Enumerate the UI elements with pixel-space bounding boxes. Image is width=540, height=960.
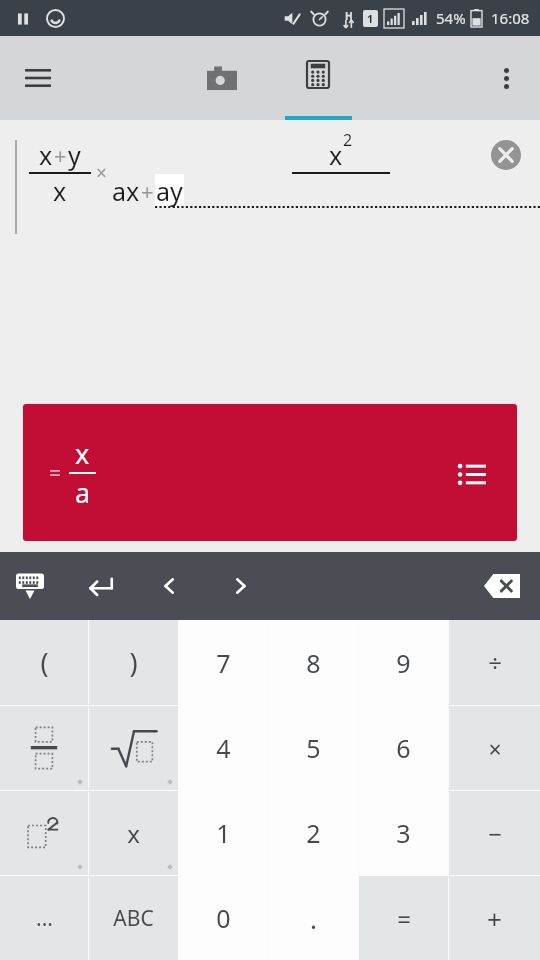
button[interactable]: Open navigation menu [14,54,62,102]
button[interactable]: × [449,706,540,790]
button[interactable]: Move cursor left [146,562,194,610]
staticText: 7 [216,646,231,680]
staticText: 2 [306,816,321,850]
button[interactable]: 6 [359,706,448,790]
staticText: ÷ [488,646,502,679]
button[interactable]: 9 [359,620,448,705]
staticText: 4 [216,731,231,765]
button[interactable]: 5 [269,706,358,790]
staticText: 2 [343,129,353,151]
staticText: + [141,176,154,206]
staticText: ABC [113,904,154,933]
button[interactable]: ) [89,620,178,705]
staticText: ( [40,644,49,681]
button[interactable]: Hide keyboard [6,562,54,610]
button[interactable]: Show solving steps [448,449,496,497]
button[interactable]: = [359,876,448,960]
button[interactable]: 2 [269,791,358,875]
button[interactable]: 8 [269,620,358,705]
staticText: 16:08 [491,8,530,28]
button[interactable]: 0 [179,876,268,960]
staticText: + [54,140,67,170]
staticText: x [39,138,53,172]
staticText: 1 [216,816,231,850]
staticText: x [53,174,67,208]
staticText: = [49,459,62,488]
button[interactable]: + [449,876,540,960]
staticText: − [488,817,502,850]
staticText: 6 [396,731,411,765]
staticText: 54% [436,8,466,28]
button[interactable]: Square root [89,706,178,790]
button[interactable]: Backspace [474,558,530,614]
staticText: ) [129,644,138,681]
staticText: x [75,435,90,472]
button[interactable]: 1 [179,791,268,875]
button[interactable]: x [89,791,178,875]
staticText: a [75,474,91,511]
button[interactable]: Move cursor right [216,562,264,610]
staticText: 9 [396,646,411,680]
button[interactable]: ABC [89,876,178,960]
staticText: + [487,901,502,936]
staticText: × [488,733,502,764]
staticText: 8 [306,646,321,680]
button[interactable]: Clear expression [482,131,530,179]
button[interactable]: ÷ [449,620,540,705]
button[interactable]: Fraction [0,706,88,790]
staticText: ay [156,174,183,208]
staticText: 5 [306,731,321,765]
button[interactable]: 4 [179,706,268,790]
staticText: y [68,138,81,172]
button[interactable]: 7 [179,620,268,705]
button[interactable]: More options [482,54,530,102]
button[interactable]: Calculator [281,36,355,120]
staticText: ... [36,904,53,933]
button[interactable]: − [449,791,540,875]
button[interactable]: New line [76,562,124,610]
button[interactable]: = [23,404,517,541]
staticText: = [397,902,411,935]
button[interactable]: . [269,876,358,960]
staticText: 1 [367,11,374,26]
staticText: × [96,160,107,186]
staticText: 3 [396,816,411,850]
button[interactable]: 3 [359,791,448,875]
staticText: x [329,138,343,172]
staticText: 0 [216,901,231,935]
button[interactable]: Power of two [0,791,88,875]
button[interactable]: ... [0,876,88,960]
button[interactable]: ( [0,620,88,705]
staticText: H [345,9,353,23]
staticText: x [127,817,140,850]
staticText: ax [112,174,140,208]
staticText: . [310,901,317,936]
button[interactable]: Camera [185,36,259,120]
